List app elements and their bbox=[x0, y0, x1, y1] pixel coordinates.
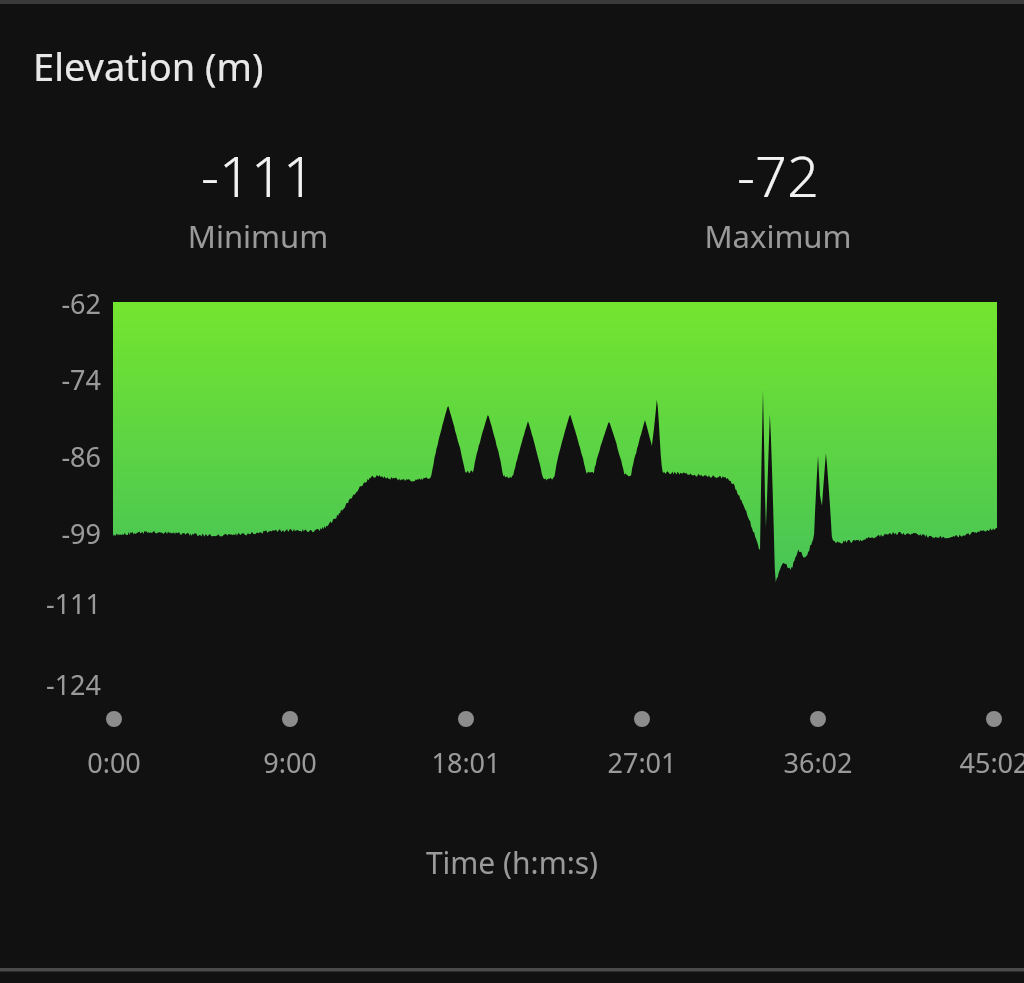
staticText: -124 bbox=[0, 666, 101, 702]
staticText: 36:02 bbox=[738, 744, 898, 784]
staticText: -74 bbox=[0, 361, 101, 397]
staticText: -86 bbox=[0, 438, 101, 474]
staticText: 45:02 bbox=[914, 744, 1024, 784]
staticText: -111 bbox=[78, 137, 438, 263]
button[interactable]: Maximum -72 bbox=[598, 137, 958, 263]
staticText: 0:00 bbox=[34, 744, 194, 784]
button[interactable]: Minimum -111 bbox=[78, 137, 438, 263]
staticText: 27:01 bbox=[562, 744, 722, 784]
staticText: -72 bbox=[598, 137, 958, 263]
staticText: -111 bbox=[0, 585, 101, 621]
staticText: 18:01 bbox=[386, 744, 546, 784]
staticText: -99 bbox=[0, 515, 101, 551]
staticText: -62 bbox=[0, 285, 101, 321]
staticText: Minimum bbox=[78, 215, 438, 341]
staticText: Maximum bbox=[598, 215, 958, 341]
button[interactable]: Time (h:m:s) bbox=[0, 842, 1024, 886]
button[interactable]: Elevation (m) bbox=[33, 40, 264, 92]
staticText: 9:00 bbox=[210, 744, 370, 784]
